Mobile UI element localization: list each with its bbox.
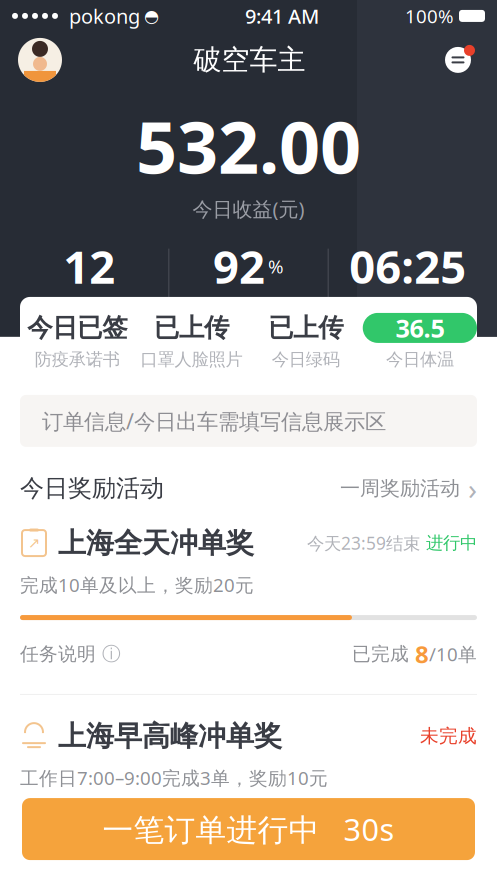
staticText: 成交率 [220,300,277,323]
staticText: 任务说明 [20,642,96,665]
staticText: 06:25 [349,236,466,296]
staticText: 未完成 [420,725,477,747]
button[interactable]: ↗ [0,526,497,670]
staticText: 在线时长 [370,300,446,323]
staticText: 一笔订单进行中 30s [102,809,394,849]
staticText: 9:41 AM [245,3,319,29]
staticText: 一周奖励活动 [340,476,460,501]
staticText: 36.5 [395,311,444,345]
button[interactable]: 已上传 [134,313,248,370]
button[interactable]: 一周奖励活动 [340,469,477,508]
staticText: /10单 [429,642,477,666]
staticText: 已完成 [352,642,409,665]
staticText: 已上传 [154,312,229,343]
staticText: 已上传 [268,312,343,343]
staticText: 12 [63,236,115,296]
button[interactable]: 今日已签 [20,313,134,370]
button[interactable]: 一笔订单进行中 30s [22,798,475,860]
staticText: ◓ [144,6,159,26]
staticText: 工作日7:00–9:00完成3单，奖励10元 [20,765,328,790]
button[interactable]: Profile [18,38,62,82]
button[interactable]: 已上传 [248,313,363,370]
staticText: 进行中 [426,532,477,554]
staticText: 上海早高峰冲单奖 [58,719,282,753]
staticText: 今天23:59结束 [307,531,420,554]
staticText: pokong [69,3,140,29]
staticText: 今日已签 [27,312,127,343]
staticText: 完成10单及以上，奖励20元 [20,572,254,597]
staticText: ⓘ [102,642,121,665]
staticText: 订单信息/今日出车需填写信息展示区 [42,407,386,435]
staticText: 今日接单 [51,300,127,323]
staticText: 8 [409,638,429,670]
staticText: 92 [213,236,265,296]
staticText: ↗ [28,535,40,551]
staticText: 今日收益(元) [192,195,304,222]
button[interactable]: 36.5 [363,313,477,370]
staticText: % [268,254,284,279]
staticText: 532.00 [136,98,361,193]
staticText: 100% [405,3,454,28]
staticText: › [468,469,477,508]
staticText: 防疫承诺书 [35,349,120,370]
staticText: 破空车主 [193,43,305,77]
staticText: 口罩人脸照片 [140,349,242,370]
button[interactable]: 上海早高峰冲单奖 [0,719,497,790]
staticText: 今日体温 [386,349,454,370]
staticText: 今日奖励活动 [20,474,164,503]
staticText: 上海全天冲单奖 [58,526,254,560]
staticText: 今日绿码 [272,349,340,370]
button[interactable]: Messages [437,39,479,81]
